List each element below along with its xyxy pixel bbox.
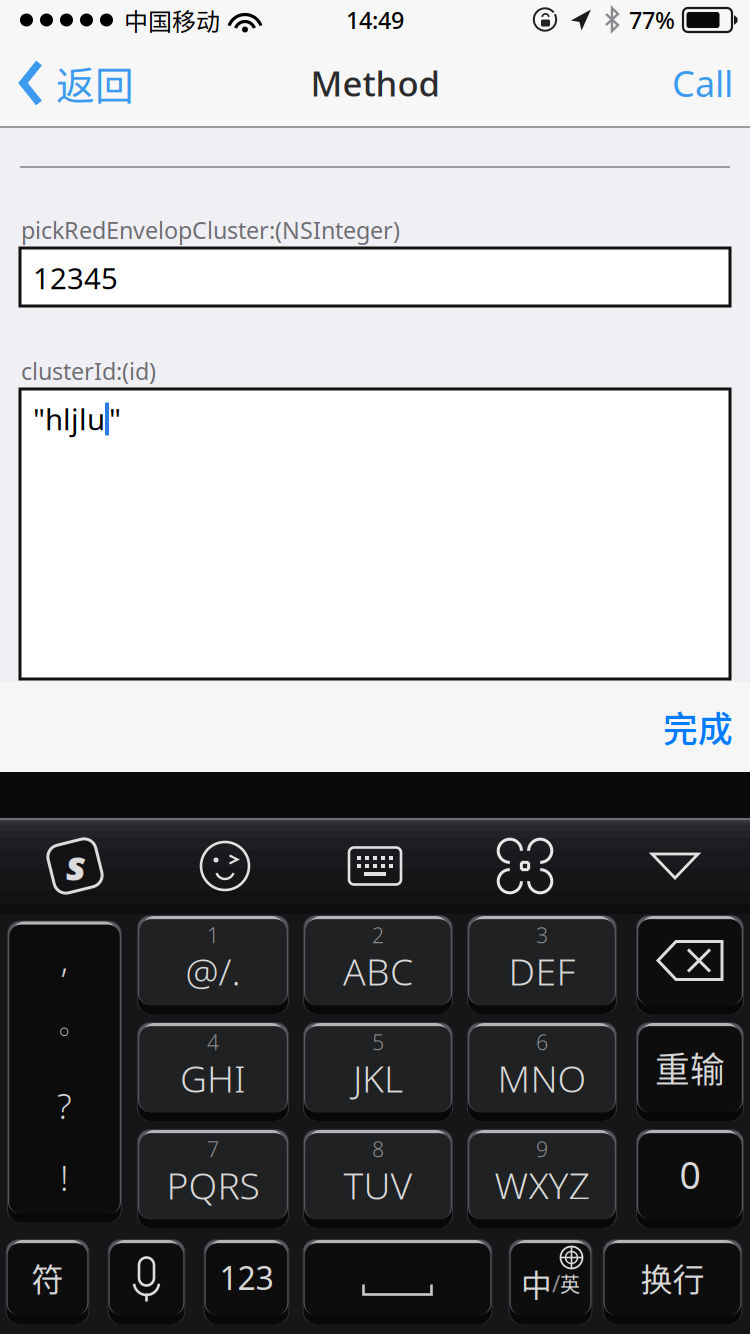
staticText: 5	[372, 1027, 384, 1057]
button[interactable]: 3	[468, 916, 616, 1005]
button[interactable]: ,	[8, 921, 121, 1213]
staticText: "hljlu	[33, 399, 105, 439]
staticText: 换行	[640, 1254, 704, 1301]
button[interactable]: 6	[468, 1023, 616, 1112]
staticText: 123	[219, 1256, 273, 1299]
staticText: 完成	[663, 702, 733, 752]
staticText: 4	[207, 1027, 219, 1057]
staticText: TUV	[343, 1160, 412, 1210]
button[interactable]: 符	[6, 1240, 88, 1315]
staticText: 6	[536, 1027, 548, 1057]
staticText: 重输	[655, 1042, 725, 1093]
button[interactable]: 8	[304, 1130, 452, 1219]
button[interactable]: 完成	[641, 693, 750, 761]
button[interactable]: 0	[637, 1130, 743, 1219]
staticText: GHI	[180, 1053, 246, 1103]
staticText: 2	[372, 920, 384, 950]
staticText: 中	[521, 1261, 552, 1306]
staticText: 7	[207, 1134, 219, 1164]
staticText: ,	[60, 935, 68, 982]
staticText: WXYZ	[494, 1160, 589, 1210]
button[interactable]: Call	[658, 40, 750, 126]
staticText: /	[552, 1268, 560, 1299]
button[interactable]: Delete	[637, 916, 743, 1005]
button[interactable]: 5	[304, 1023, 452, 1112]
button[interactable]: Hide keyboard	[600, 818, 750, 914]
staticText: 符	[31, 1254, 63, 1301]
button[interactable]: Keyboard layout	[300, 818, 450, 914]
staticText: 3	[536, 920, 548, 950]
staticText: 1	[207, 920, 219, 950]
staticText: 12345	[33, 258, 118, 298]
staticText: MNO	[497, 1053, 586, 1103]
staticText: Call	[672, 58, 733, 107]
button[interactable]: Switch language	[509, 1240, 591, 1315]
staticText: 英	[560, 1269, 580, 1298]
button[interactable]: Voice input	[108, 1240, 184, 1315]
staticText: PQRS	[166, 1160, 259, 1210]
staticText: 14:49	[346, 4, 404, 36]
button[interactable]: 9	[468, 1130, 616, 1219]
staticText: Method	[310, 59, 439, 107]
staticText: ABC	[343, 946, 413, 996]
button[interactable]: 1	[138, 916, 288, 1005]
button[interactable]: 2	[304, 916, 452, 1005]
button[interactable]: 4	[138, 1023, 288, 1112]
staticText: 77%	[629, 4, 675, 36]
button[interactable]: Sogou input	[0, 818, 150, 914]
button[interactable]: 换行	[603, 1240, 741, 1315]
staticText: !	[60, 1154, 69, 1201]
button[interactable]: 返回	[0, 40, 148, 126]
staticText: 中国移动	[124, 3, 220, 37]
button[interactable]: Emoji	[150, 818, 300, 914]
staticText: pickRedEnvelopCluster:(NSInteger)	[21, 214, 400, 246]
button[interactable]: 123	[204, 1240, 288, 1315]
staticText: 0	[679, 1149, 700, 1200]
button[interactable]: 7	[138, 1130, 288, 1219]
button[interactable]: 重输	[637, 1023, 743, 1112]
staticText: ◦	[56, 1016, 73, 1049]
staticText: 8	[372, 1134, 384, 1164]
staticText: "	[109, 399, 121, 439]
button[interactable]: More	[450, 818, 600, 914]
button[interactable]: Space	[303, 1240, 491, 1315]
staticText: JKL	[353, 1053, 403, 1103]
staticText: DEF	[508, 946, 575, 996]
staticText: 返回	[56, 55, 134, 111]
staticText: clusterId:(id)	[21, 355, 156, 387]
staticText: s	[66, 838, 86, 892]
staticText: @/.	[185, 946, 240, 996]
staticText: ?	[57, 1082, 72, 1129]
staticText: 9	[536, 1134, 548, 1164]
